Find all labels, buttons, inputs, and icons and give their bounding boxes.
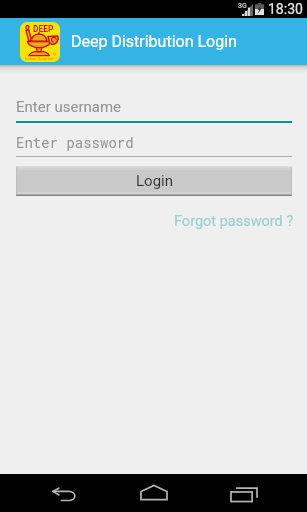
staticText: 3G	[238, 2, 247, 10]
button[interactable]: Enter username	[0, 98, 307, 123]
staticText: Enter password	[16, 133, 134, 151]
button[interactable]: Login	[16, 166, 292, 196]
button[interactable]: Home	[127, 474, 181, 512]
button[interactable]: Forgot password ?	[174, 213, 294, 230]
staticText: Deep Distribution Login	[71, 32, 237, 51]
staticText: 18:30	[268, 1, 303, 17]
staticText: Login	[136, 172, 173, 190]
button[interactable]: Recents	[217, 474, 271, 512]
staticText: Indian Gourmet	[25, 56, 54, 61]
button[interactable]: Back	[37, 474, 91, 512]
button[interactable]: Enter password	[0, 133, 307, 157]
staticText: DEEP	[33, 24, 54, 34]
staticText: Enter username	[16, 98, 122, 116]
